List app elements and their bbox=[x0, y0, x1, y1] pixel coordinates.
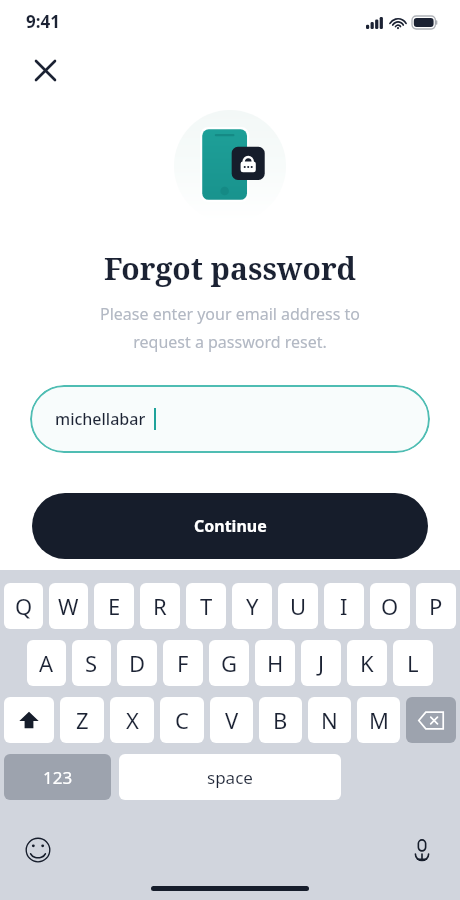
button[interactable]: U bbox=[278, 583, 318, 629]
button[interactable]: M bbox=[357, 697, 400, 743]
staticText: D bbox=[129, 648, 146, 678]
button[interactable]: Backspace bbox=[406, 697, 456, 743]
button[interactable]: Shift bbox=[4, 697, 54, 743]
button[interactable]: T bbox=[186, 583, 226, 629]
button[interactable]: P bbox=[416, 583, 456, 629]
button[interactable]: Q bbox=[4, 583, 43, 629]
staticText: A bbox=[39, 648, 54, 678]
button[interactable]: E bbox=[94, 583, 134, 629]
staticText: M bbox=[369, 705, 389, 735]
button[interactable]: C bbox=[160, 697, 204, 743]
staticText: L bbox=[407, 648, 419, 678]
button[interactable]: N bbox=[308, 697, 351, 743]
staticText: Please enter your email address to reque… bbox=[60, 303, 400, 353]
staticText: F bbox=[177, 648, 189, 678]
button[interactable]: Close bbox=[26, 51, 64, 89]
staticText: U bbox=[290, 591, 307, 621]
staticText: Z bbox=[76, 705, 89, 735]
button[interactable]: I bbox=[324, 583, 364, 629]
staticText: Y bbox=[246, 591, 259, 621]
button[interactable]: Dictation bbox=[402, 830, 442, 870]
button[interactable]: A bbox=[27, 640, 66, 686]
staticText: O bbox=[381, 591, 399, 621]
button[interactable]: Y bbox=[232, 583, 272, 629]
staticText: E bbox=[108, 591, 121, 621]
staticText: Continue bbox=[194, 515, 267, 537]
staticText: I bbox=[340, 591, 348, 621]
button[interactable]: J bbox=[301, 640, 341, 686]
button[interactable]: D bbox=[117, 640, 157, 686]
staticText: P bbox=[429, 591, 443, 621]
button[interactable]: G bbox=[209, 640, 249, 686]
button[interactable]: space bbox=[119, 754, 341, 800]
button[interactable]: V bbox=[210, 697, 253, 743]
staticText: space bbox=[207, 766, 253, 789]
button[interactable]: Emoji bbox=[18, 830, 58, 870]
button[interactable]: B bbox=[259, 697, 302, 743]
button[interactable]: Continue bbox=[32, 493, 428, 559]
button[interactable]: Z bbox=[60, 697, 104, 743]
staticText: T bbox=[200, 591, 213, 621]
staticText: S bbox=[85, 648, 98, 678]
button[interactable]: L bbox=[393, 640, 433, 686]
staticText: B bbox=[273, 705, 288, 735]
button[interactable]: H bbox=[255, 640, 295, 686]
staticText: 123 bbox=[43, 766, 73, 789]
staticText: W bbox=[58, 591, 79, 621]
staticText: J bbox=[318, 648, 325, 678]
staticText: R bbox=[153, 591, 167, 621]
staticText: N bbox=[321, 705, 338, 735]
staticText: K bbox=[360, 648, 374, 678]
button[interactable]: W bbox=[49, 583, 88, 629]
button[interactable]: K bbox=[347, 640, 387, 686]
staticText: michellabar bbox=[55, 408, 146, 430]
staticText: 9:41 bbox=[26, 10, 60, 33]
button[interactable]: F bbox=[163, 640, 203, 686]
staticText: C bbox=[175, 705, 189, 735]
button[interactable]: S bbox=[72, 640, 111, 686]
button[interactable]: X bbox=[110, 697, 154, 743]
button[interactable]: O bbox=[370, 583, 410, 629]
staticText: Q bbox=[15, 591, 33, 621]
button[interactable]: 123 bbox=[4, 754, 111, 800]
button[interactable]: michellabar bbox=[30, 385, 430, 453]
staticText: V bbox=[225, 705, 239, 735]
staticText: G bbox=[221, 648, 238, 678]
staticText: X bbox=[126, 705, 139, 735]
staticText: H bbox=[267, 648, 284, 678]
staticText: Forgot password bbox=[0, 248, 460, 289]
button[interactable]: R bbox=[140, 583, 180, 629]
